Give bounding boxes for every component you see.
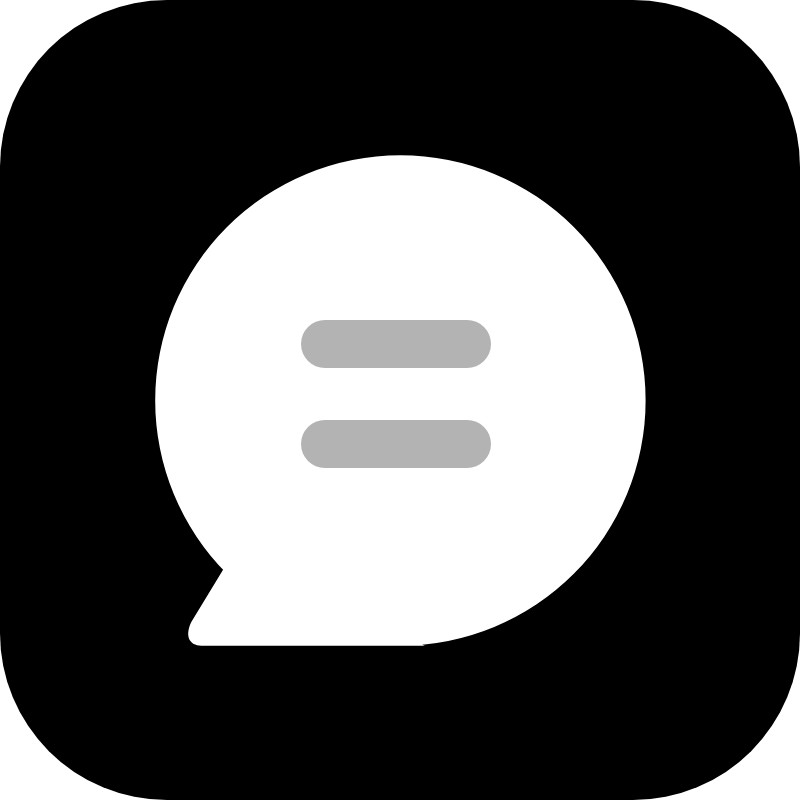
button[interactable]: Messages app icon: [0, 0, 800, 800]
